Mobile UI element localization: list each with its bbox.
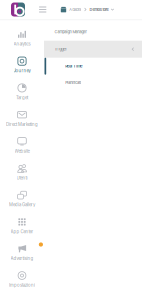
staticText: App Center [10,229,33,234]
staticText: Direct Marketing [6,122,38,127]
button[interactable]: Menu [36,2,49,17]
button[interactable]: Analytics [0,25,44,52]
button[interactable]: Adabra [60,7,81,12]
button[interactable]: Website [0,132,44,159]
button[interactable]: Utenti [0,159,44,186]
staticText: Target [16,95,28,100]
staticText: Impostazioni [9,283,35,288]
staticText: Adabra [69,7,81,12]
staticText: Media Gallery [9,202,35,207]
button[interactable]: App Center [0,213,44,239]
button[interactable]: Target [0,79,44,105]
staticText: Journey [13,68,30,73]
button[interactable]: Pianificati [44,75,142,91]
staticText: Real Time [65,64,82,68]
button[interactable]: Media Gallery [0,186,44,213]
staticText: Website [14,149,29,154]
button[interactable]: Journey [0,52,44,79]
button[interactable]: Real Time [44,58,142,75]
button[interactable]: Impostazioni [0,266,44,293]
staticText: Pianificati [65,80,81,85]
staticText: Analytics [13,41,30,47]
staticText: DemoStore [89,7,108,12]
staticText: Utenti [16,175,27,181]
staticText: Advertising [10,256,33,261]
button[interactable]: Direct Marketing [0,105,44,132]
staticText: Campaign Manager [54,29,86,34]
button[interactable]: Trigger [44,41,142,58]
button[interactable]: DemoStore [89,7,114,12]
button[interactable]: Advertising [0,239,44,266]
staticText: Trigger [54,47,66,51]
